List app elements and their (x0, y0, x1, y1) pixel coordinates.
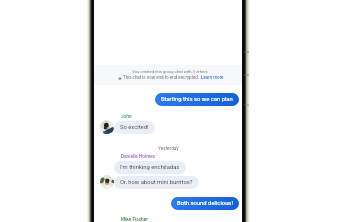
staticText: Starting this so we can plan (161, 96, 233, 103)
button[interactable]: John avatar (100, 120, 114, 134)
button[interactable]: Both sound delicious! (171, 197, 239, 210)
button[interactable]: Starting this so we can plan (155, 93, 239, 106)
button[interactable]: Danielle Holmes avatar (100, 175, 114, 189)
button[interactable]: Mike Fischer (121, 217, 148, 222)
staticText: Yesterday (158, 146, 179, 152)
button[interactable]: Or, how about mini burritos? (114, 176, 199, 189)
staticText: Both sound delicious! (177, 200, 233, 207)
button[interactable]: So excited! (114, 121, 155, 134)
button[interactable]: John (121, 114, 132, 120)
button[interactable]: Danielle Holmes (121, 154, 156, 160)
staticText: You created this group chat with 3 other… (132, 69, 208, 74)
button[interactable]: I'm thinking enchiladas (114, 161, 186, 174)
staticText: So excited! (120, 124, 149, 131)
staticText: This chat is now end-to-end encrypted. (123, 75, 201, 80)
staticText: I'm thinking enchiladas (120, 164, 180, 171)
staticText: Or, how about mini burritos? (120, 179, 193, 186)
button[interactable]: Learn more (201, 75, 224, 80)
